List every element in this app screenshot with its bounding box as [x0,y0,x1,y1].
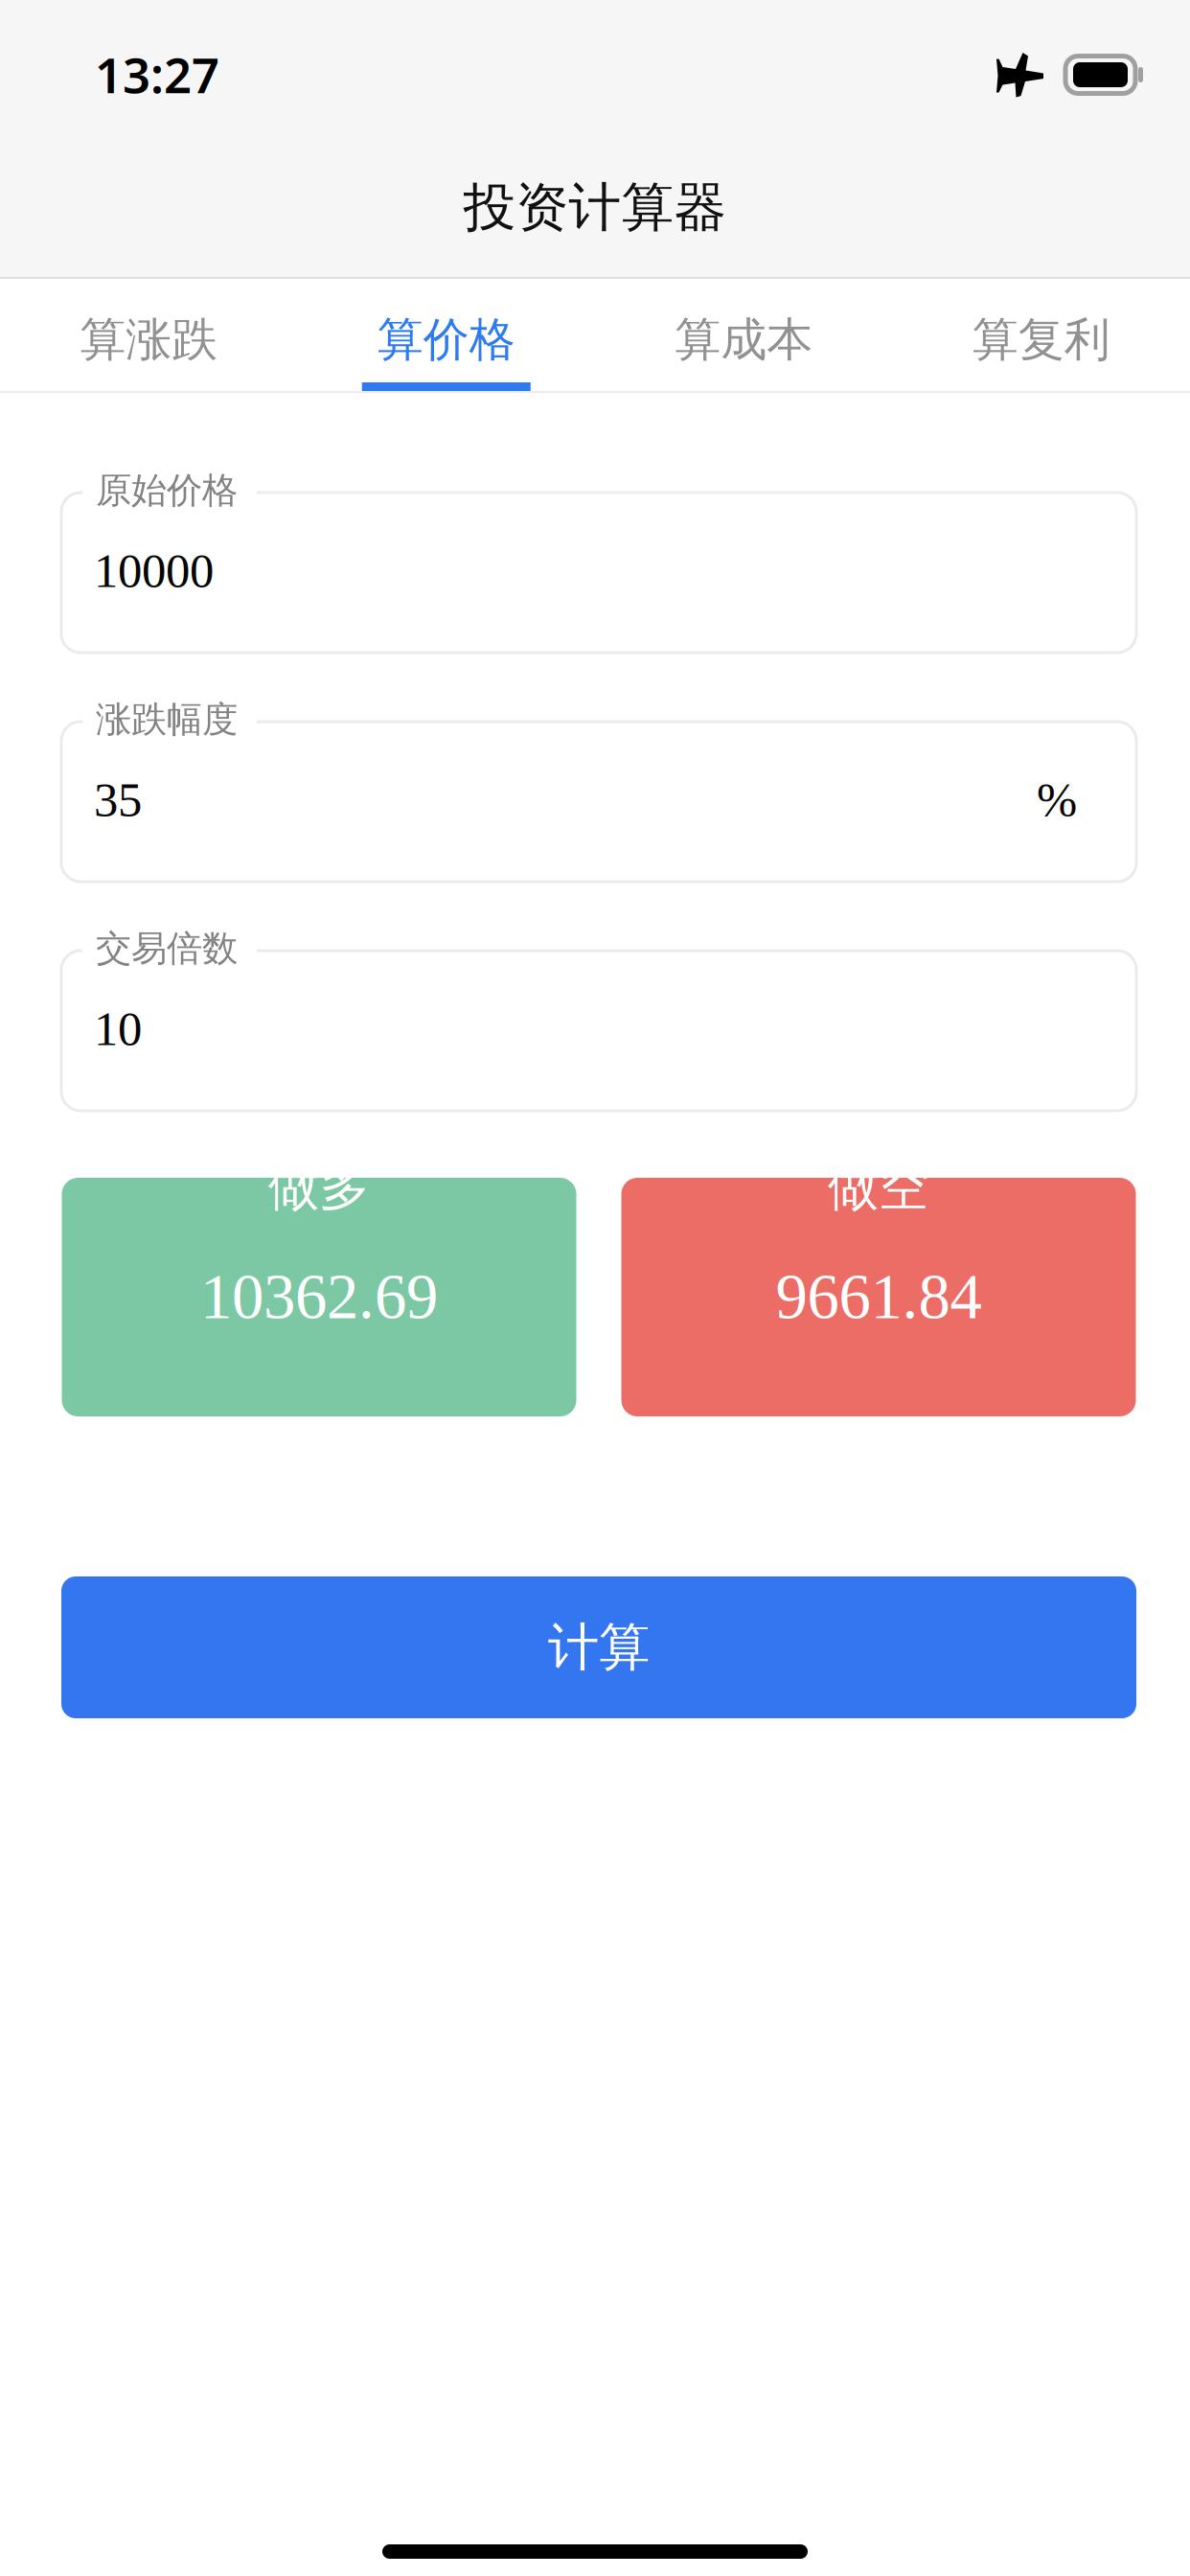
staticText: 35 [94,773,142,827]
button[interactable]: 10 [61,927,1136,1111]
button[interactable]: 计算 [61,1576,1136,1718]
staticText: 10362.69 [200,1261,438,1332]
staticText: 交易倍数 [96,927,238,971]
staticText: % [1037,773,1077,827]
button[interactable]: 算价格 [297,279,595,391]
staticText: 涨跌幅度 [96,698,238,742]
staticText: 投资计算器 [463,175,727,240]
staticText: 计算 [548,1616,650,1679]
staticText: 做多 [268,1156,370,1219]
button[interactable]: 算涨跌 [0,279,297,391]
staticText: 9661.84 [776,1261,982,1332]
staticText: 10000 [94,544,214,598]
staticText: 13:27 [95,42,219,107]
staticText: 算复利 [972,311,1110,368]
staticText: 算涨跌 [80,311,218,368]
staticText: 做空 [828,1156,929,1219]
button[interactable]: 10000 [61,469,1136,653]
button[interactable]: 35 [61,698,1136,882]
staticText: 算价格 [377,311,515,368]
staticText: 算成本 [675,311,813,368]
button[interactable]: 算成本 [595,279,892,391]
staticText: 10 [94,1002,142,1056]
staticText: 原始价格 [96,469,238,513]
button[interactable]: 算复利 [892,279,1190,391]
